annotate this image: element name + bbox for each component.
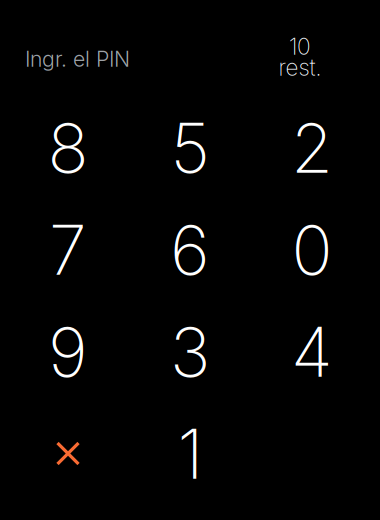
staticText: 8 bbox=[47, 107, 88, 189]
staticText: rest. bbox=[278, 54, 321, 81]
button[interactable]: 6 bbox=[129, 199, 251, 301]
staticText: 9 bbox=[48, 311, 88, 393]
button[interactable]: 8 bbox=[7, 97, 129, 199]
button[interactable]: 7 bbox=[7, 199, 129, 301]
button[interactable]: 4 bbox=[251, 301, 373, 403]
button[interactable]: 9 bbox=[7, 301, 129, 403]
staticText: 4 bbox=[291, 311, 333, 393]
staticText: 7 bbox=[49, 209, 87, 291]
button[interactable]: Borrar bbox=[7, 403, 129, 505]
staticText: 1 bbox=[177, 413, 203, 495]
staticText: 6 bbox=[170, 209, 210, 291]
staticText: 0 bbox=[291, 209, 332, 291]
staticText: 2 bbox=[291, 107, 333, 189]
staticText: 5 bbox=[170, 107, 209, 189]
staticText: 3 bbox=[170, 311, 210, 393]
staticText: 10 bbox=[289, 33, 311, 60]
staticText: Ingr. el PIN bbox=[25, 46, 130, 72]
button[interactable]: 1 bbox=[129, 403, 251, 505]
button[interactable]: 3 bbox=[129, 301, 251, 403]
button[interactable]: 2 bbox=[251, 97, 373, 199]
button[interactable]: 5 bbox=[129, 97, 251, 199]
button[interactable]: 0 bbox=[251, 199, 373, 301]
